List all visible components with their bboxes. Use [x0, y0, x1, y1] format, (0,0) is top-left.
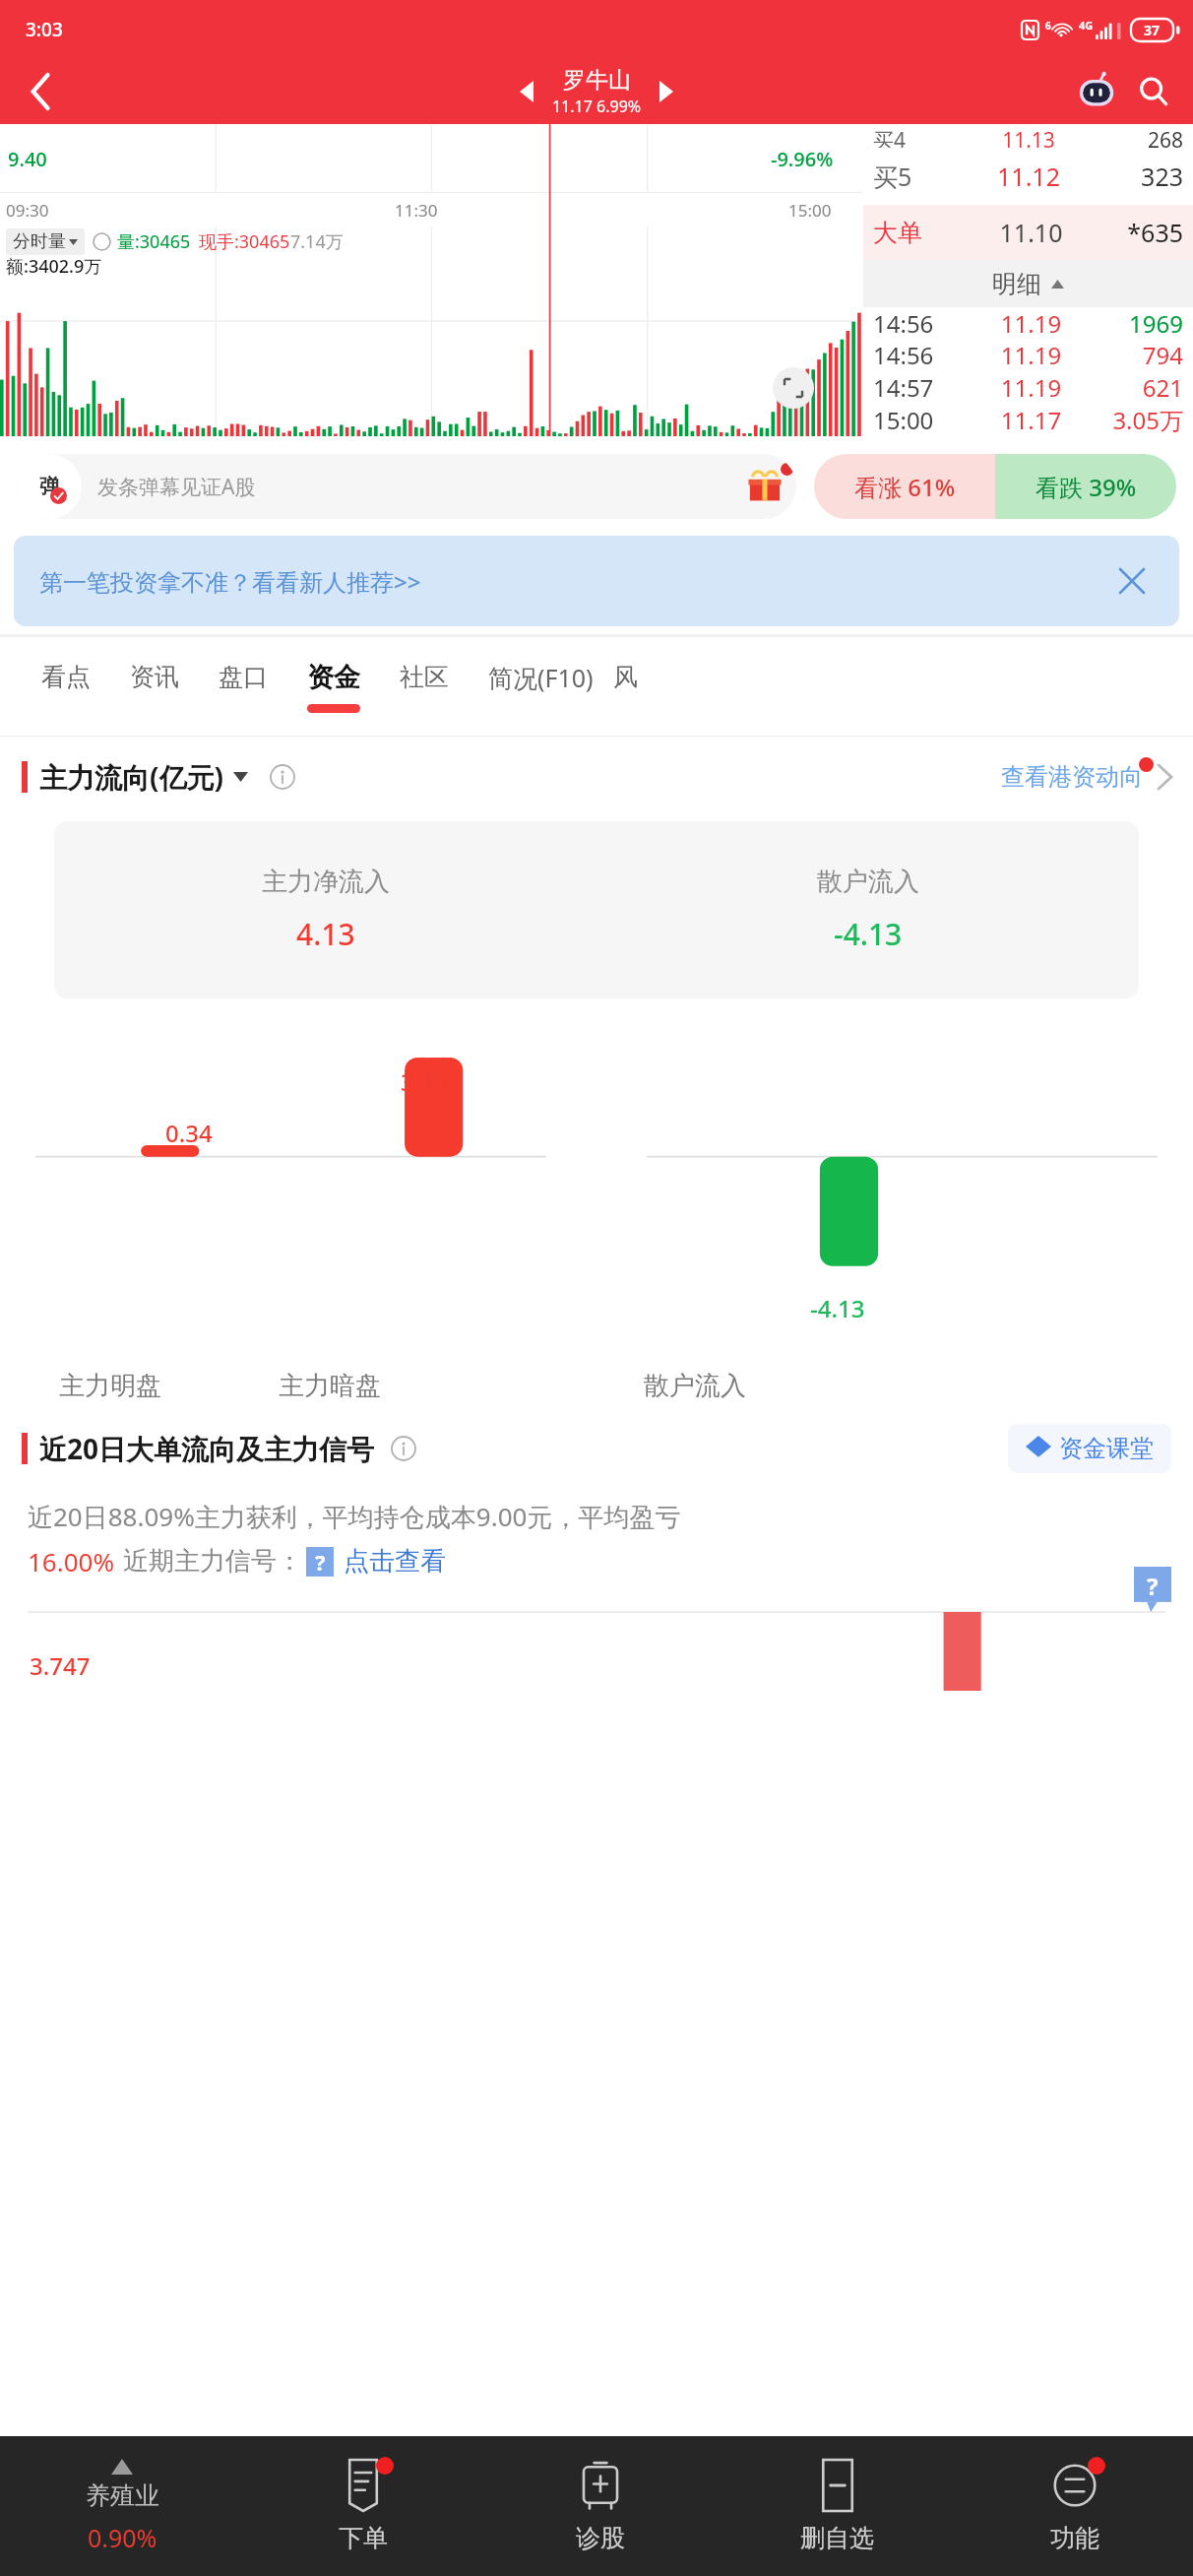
staticText: 主力流向(亿元) [39, 758, 223, 796]
staticText: 6 [1045, 19, 1051, 32]
staticText: 14:57 [873, 371, 980, 404]
button[interactable]: 主力流向(亿元) [39, 758, 248, 796]
button[interactable]: Search [1128, 66, 1179, 117]
staticText: 11.19 [980, 339, 1082, 371]
staticText: 盘口 [219, 662, 268, 692]
button[interactable]: 看点 [41, 637, 91, 736]
staticText: 15:00 [788, 199, 832, 222]
staticText: 主力暗盘 [279, 1370, 381, 1402]
staticText: 16.00% [28, 1544, 115, 1578]
button[interactable]: 社区 [400, 637, 449, 736]
staticText: 7.14万 [290, 229, 344, 254]
button[interactable]: Help [1134, 1567, 1171, 1612]
staticText: 看跌 39% [1036, 471, 1137, 503]
button[interactable]: 主力净流入 [54, 821, 1139, 998]
button[interactable]: 大单 [873, 205, 1183, 260]
button[interactable]: 15:00 [873, 404, 1183, 436]
button[interactable]: Next stock [645, 70, 688, 113]
staticText: 11.17 [980, 404, 1082, 436]
staticText: 323 [1087, 160, 1183, 193]
staticText: 37 [1144, 21, 1161, 39]
staticText: 794 [1082, 339, 1183, 371]
staticText: 3.79 [401, 1065, 448, 1098]
staticText: 资讯 [130, 662, 179, 692]
button[interactable]: Info [268, 762, 297, 792]
staticText: 散户流入 [644, 1370, 746, 1402]
staticText: 社区 [400, 662, 449, 692]
button[interactable]: 第一笔投资拿不准？看看新人推荐>> [39, 536, 1154, 626]
staticText: 11:30 [395, 199, 438, 222]
staticText: 14:56 [873, 339, 980, 371]
staticText: 养殖业 [86, 2480, 159, 2511]
button[interactable]: 14:56 [873, 339, 1183, 371]
staticText: 11.19 [980, 307, 1082, 339]
staticText: 买5 [873, 160, 971, 193]
button[interactable]: 功能 [956, 2436, 1193, 2576]
button[interactable]: 点击查看 [344, 1545, 446, 1578]
staticText: 0.34 [165, 1117, 213, 1149]
staticText: 近期主力信号： [123, 1545, 302, 1578]
button[interactable]: 查看港资动向 [1001, 762, 1171, 792]
staticText: 3.05万 [1082, 404, 1183, 436]
button[interactable]: Previous stock [505, 70, 548, 113]
staticText: -4.13 [834, 914, 903, 954]
staticText: 15:00 [873, 404, 980, 436]
staticText: 近20日大单流向及主力信号 [39, 1430, 375, 1467]
button[interactable]: 资讯 [130, 637, 179, 736]
staticText: 弹 [39, 474, 60, 499]
staticText: 621 [1082, 371, 1183, 404]
button[interactable]: 诊股 [481, 2436, 719, 2576]
staticText: 罗牛山 [563, 66, 631, 95]
button[interactable]: 资金 [307, 637, 360, 736]
button[interactable]: 盘口 [219, 637, 268, 736]
staticText: 资金 [307, 661, 360, 694]
button[interactable]: 看涨 61% [814, 454, 1176, 519]
staticText: ? [1147, 1570, 1159, 1602]
staticText: 删自选 [800, 2523, 874, 2553]
button[interactable]: 买4 [873, 126, 1183, 148]
button[interactable]: 下单 [244, 2436, 481, 2576]
button[interactable]: Close banner [1110, 559, 1154, 603]
staticText: -9.96% [771, 146, 834, 172]
staticText: 分时量 [13, 230, 66, 253]
staticText: 近20日88.09%主力获利，平均持仓成本9.00元，平均盈亏 [28, 1499, 681, 1534]
staticText: 1969 [1082, 307, 1183, 339]
staticText: 11.19 [980, 371, 1082, 404]
staticText: 风 [613, 662, 638, 692]
button[interactable]: 弹 [17, 454, 796, 519]
staticText: 11.17 6.99% [552, 96, 642, 117]
button[interactable]: 罗牛山 [552, 66, 642, 117]
button[interactable]: Back [14, 64, 69, 119]
button[interactable]: 分时量 [13, 230, 78, 253]
staticText: ? [315, 1547, 326, 1577]
staticText: 散户流入 [817, 866, 919, 898]
button[interactable]: 简况(F10) [488, 637, 594, 736]
staticText: 现手:30465 [199, 229, 290, 254]
staticText: *635 [1087, 216, 1183, 249]
button[interactable]: Info [389, 1434, 418, 1463]
button[interactable]: 删自选 [719, 2436, 956, 2576]
button[interactable]: 养殖业 [0, 2436, 244, 2576]
staticText: 4.13 [296, 914, 355, 954]
staticText: 主力明盘 [59, 1370, 161, 1402]
staticText: 明细 [992, 269, 1041, 299]
button[interactable]: Fullscreen chart [773, 367, 814, 409]
button[interactable]: 14:56 [873, 307, 1183, 339]
staticText: 09:30 [6, 199, 49, 222]
button[interactable]: AI assistant [1071, 66, 1122, 117]
staticText: 11.12 [971, 160, 1087, 193]
staticText: 查看港资动向 [1001, 762, 1143, 792]
button[interactable]: 风 [613, 637, 638, 736]
staticText: 第一笔投资拿不准？看看新人推荐>> [39, 565, 421, 598]
staticText: 3.747 [30, 1649, 91, 1682]
staticText: 4G [1079, 18, 1094, 32]
staticText: 买4 [873, 126, 971, 148]
staticText: 11.13 [971, 126, 1087, 148]
button[interactable]: 明细 [863, 260, 1193, 307]
staticText: 0.90% [88, 2521, 157, 2554]
staticText: 简况(F10) [488, 661, 594, 694]
button[interactable]: 资金课堂 [1026, 1434, 1154, 1463]
button[interactable]: 14:57 [873, 371, 1183, 404]
button[interactable]: 买5 [873, 148, 1183, 205]
staticText: 主力净流入 [262, 866, 390, 898]
